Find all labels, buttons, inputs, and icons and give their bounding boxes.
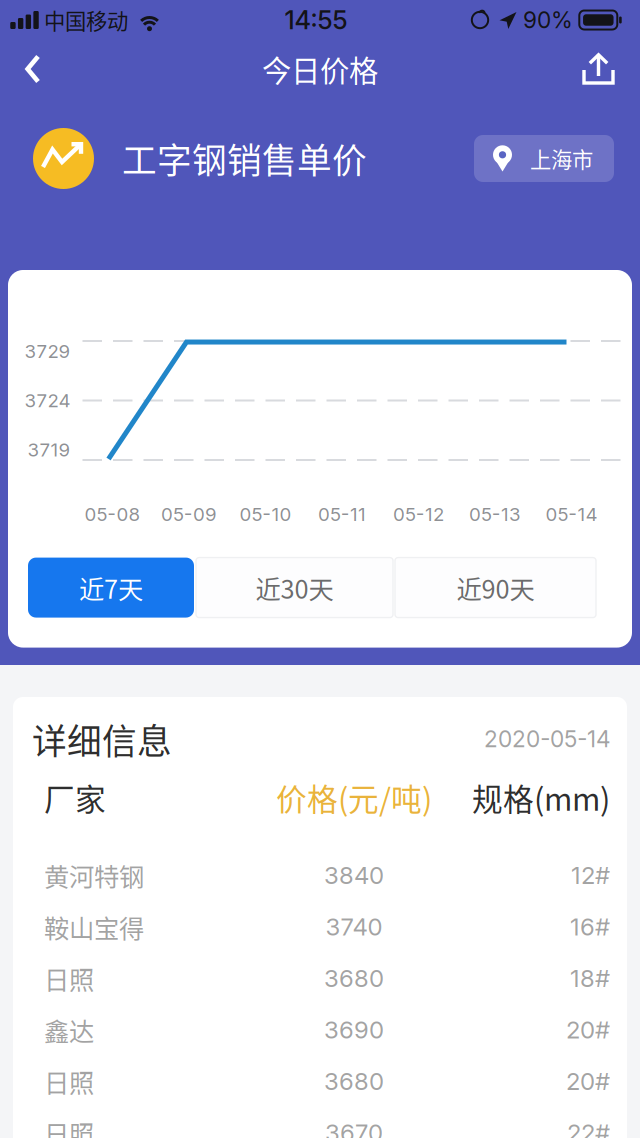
- staticText: 厂家: [44, 775, 106, 820]
- staticText: 05-11: [318, 503, 366, 526]
- staticText: 3680: [324, 1067, 384, 1096]
- staticText: 90%: [523, 6, 573, 34]
- staticText: 工字钢销售单价: [122, 133, 367, 184]
- staticText: 近90天: [456, 569, 534, 606]
- staticText: 3670: [325, 1118, 383, 1138]
- staticText: 3724: [24, 389, 70, 412]
- staticText: 20#: [566, 1015, 610, 1044]
- button[interactable]: 近90天: [395, 558, 596, 618]
- staticText: 3740: [325, 912, 382, 941]
- staticText: 20#: [566, 1067, 610, 1096]
- staticText: 3690: [324, 1015, 384, 1044]
- button[interactable]: 上海市: [474, 135, 614, 182]
- button[interactable]: Back: [0, 45, 61, 93]
- button[interactable]: Share: [562, 45, 640, 93]
- staticText: 近30天: [255, 569, 333, 606]
- button[interactable]: 近7天: [28, 558, 194, 618]
- staticText: 05-12: [393, 503, 444, 526]
- staticText: 规格(mm): [472, 775, 610, 820]
- staticText: 鞍山宝得: [44, 908, 144, 945]
- staticText: 近7天: [79, 569, 143, 606]
- staticText: 中国移动: [44, 5, 128, 35]
- staticText: 鑫达: [44, 1011, 94, 1048]
- button[interactable]: 近30天: [196, 558, 393, 618]
- staticText: 05-14: [545, 503, 597, 526]
- staticText: 3840: [324, 861, 384, 890]
- staticText: 2020-05-14: [484, 725, 611, 753]
- staticText: 14:55: [284, 5, 347, 35]
- staticText: 今日价格: [262, 48, 378, 90]
- staticText: 12#: [571, 861, 610, 890]
- staticText: 18#: [570, 964, 610, 993]
- staticText: 05-13: [469, 503, 521, 526]
- staticText: 05-08: [84, 503, 140, 526]
- staticText: 日照: [44, 960, 94, 997]
- staticText: 黄河特钢: [44, 857, 144, 894]
- staticText: 3719: [27, 438, 70, 461]
- staticText: 上海市: [530, 143, 593, 174]
- staticText: 05-09: [161, 503, 217, 526]
- staticText: 日照: [44, 1063, 94, 1100]
- staticText: 详细信息: [32, 714, 172, 764]
- staticText: 价格(元/吨): [276, 775, 432, 820]
- staticText: 16#: [570, 912, 610, 941]
- staticText: 日照: [44, 1114, 94, 1138]
- staticText: 3729: [24, 340, 70, 363]
- staticText: 05-10: [239, 503, 291, 526]
- staticText: 22#: [567, 1118, 610, 1138]
- staticText: 3680: [324, 964, 384, 993]
